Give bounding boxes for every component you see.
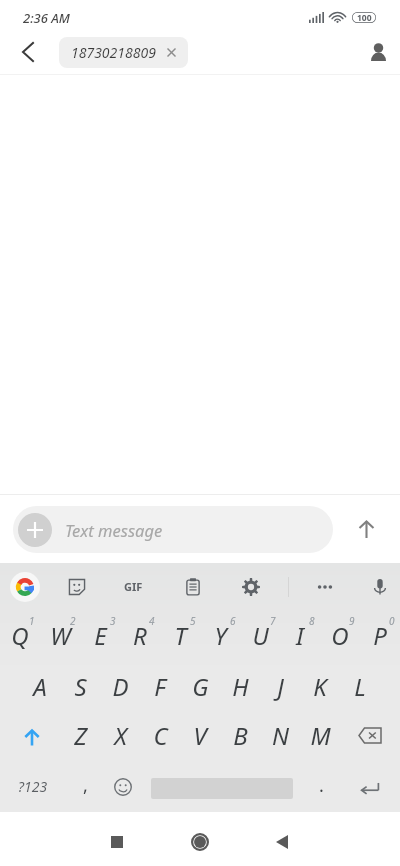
staticText: 8 xyxy=(309,614,315,628)
button[interactable]: Backspace xyxy=(340,711,400,760)
button[interactable]: G xyxy=(180,661,220,711)
staticText: 2 xyxy=(70,614,76,628)
staticText: 3 xyxy=(110,614,116,628)
staticText: B xyxy=(233,719,248,752)
staticText: L xyxy=(354,670,366,703)
button[interactable]: H xyxy=(220,661,260,711)
button[interactable]: W xyxy=(40,610,80,661)
button[interactable]: N xyxy=(260,711,300,760)
button[interactable]: U xyxy=(240,610,280,661)
staticText: Text message xyxy=(65,519,163,541)
button[interactable]: , xyxy=(66,760,104,809)
staticText: N xyxy=(272,719,289,752)
staticText: 4 xyxy=(149,614,155,628)
button[interactable]: R xyxy=(120,610,160,661)
button[interactable]: Voice input xyxy=(365,572,395,602)
button[interactable]: X xyxy=(100,711,140,760)
button[interactable]: M xyxy=(300,711,340,760)
button[interactable]: ?123 xyxy=(0,760,66,809)
staticText: W xyxy=(50,619,71,652)
button[interactable]: Home xyxy=(170,815,230,866)
staticText: K xyxy=(313,670,327,703)
button[interactable]: Emoji xyxy=(104,760,142,809)
button[interactable]: P xyxy=(360,610,400,661)
staticText: C xyxy=(153,719,168,752)
button[interactable]: Z xyxy=(60,711,100,760)
staticText: J xyxy=(277,670,284,703)
button[interactable]: D xyxy=(100,661,140,711)
staticText: O xyxy=(331,619,349,652)
staticText: P xyxy=(373,619,387,652)
staticText: 6 xyxy=(230,614,236,628)
button[interactable]: Add attachment xyxy=(13,506,333,553)
staticText: X xyxy=(114,719,127,752)
button[interactable]: O xyxy=(320,610,360,661)
staticText: F xyxy=(154,670,166,703)
button[interactable]: A xyxy=(20,661,60,711)
button[interactable]: B xyxy=(220,711,260,760)
button[interactable]: S xyxy=(60,661,100,711)
button[interactable]: Send xyxy=(348,511,384,547)
staticText: I xyxy=(296,619,304,652)
staticText: S xyxy=(74,670,87,703)
button[interactable]: Stickers xyxy=(62,572,92,602)
button[interactable]: Back xyxy=(14,38,42,66)
staticText: T xyxy=(174,619,187,652)
button[interactable]: Google xyxy=(10,572,40,602)
staticText: H xyxy=(232,670,249,703)
staticText: Y xyxy=(214,619,227,652)
staticText: G xyxy=(192,670,209,703)
staticText: V xyxy=(193,719,207,752)
button[interactable]: Enter xyxy=(340,760,400,809)
button[interactable]: I xyxy=(280,610,320,661)
button[interactable]: Back xyxy=(252,815,312,866)
staticText: U xyxy=(252,619,269,652)
staticText: R xyxy=(133,619,147,652)
button[interactable]: E xyxy=(80,610,120,661)
button[interactable]: Add attachment xyxy=(18,513,52,547)
button[interactable]: More options xyxy=(310,572,340,602)
staticText: ?123 xyxy=(18,777,48,796)
button[interactable]: Settings xyxy=(236,572,266,602)
staticText: 2:36 AM xyxy=(23,9,70,27)
button[interactable]: Contact xyxy=(363,37,393,67)
button[interactable]: Q xyxy=(0,610,40,661)
button[interactable]: Clipboard xyxy=(178,572,208,602)
button[interactable]: V xyxy=(180,711,220,760)
button[interactable]: Y xyxy=(200,610,240,661)
staticText: . xyxy=(319,773,324,798)
button[interactable]: . xyxy=(302,760,340,809)
staticText: E xyxy=(94,619,107,652)
button[interactable]: GIF xyxy=(120,575,147,598)
staticText: 0 xyxy=(389,614,395,628)
button[interactable]: Shift xyxy=(0,711,60,760)
button[interactable]: 18730218809 xyxy=(59,37,188,68)
staticText: 5 xyxy=(190,614,196,628)
button[interactable]: K xyxy=(300,661,340,711)
staticText: 18730218809 xyxy=(71,43,156,62)
staticText: GIF xyxy=(124,579,143,594)
staticText: Z xyxy=(74,719,87,752)
staticText: Q xyxy=(11,619,29,652)
button[interactable]: L xyxy=(340,661,380,711)
button[interactable]: Recents xyxy=(87,815,147,866)
staticText: D xyxy=(112,670,129,703)
staticText: 100 xyxy=(357,12,372,23)
staticText: A xyxy=(33,670,47,703)
staticText: 1 xyxy=(29,614,35,628)
staticText: M xyxy=(310,719,331,752)
staticText: , xyxy=(83,773,88,798)
button[interactable]: J xyxy=(260,661,300,711)
button[interactable]: T xyxy=(160,610,200,661)
button[interactable]: F xyxy=(140,661,180,711)
button[interactable]: C xyxy=(140,711,180,760)
staticText: 9 xyxy=(349,614,355,628)
staticText: 7 xyxy=(270,614,276,628)
